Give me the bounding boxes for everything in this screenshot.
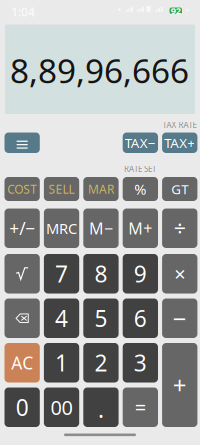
staticText: 4 bbox=[55, 303, 68, 333]
staticText: . bbox=[98, 394, 104, 424]
staticText: 6 bbox=[134, 303, 147, 333]
staticText: MAR bbox=[88, 181, 114, 197]
button[interactable]: TAX+ bbox=[162, 132, 197, 153]
button[interactable]: = bbox=[123, 387, 158, 427]
button[interactable]: M− bbox=[83, 208, 119, 248]
staticText: +/− bbox=[9, 217, 35, 240]
button[interactable]: M+ bbox=[123, 208, 158, 248]
button[interactable]: AC bbox=[4, 343, 40, 382]
staticText: MRC bbox=[46, 218, 77, 238]
staticText: RATE SET bbox=[124, 163, 156, 174]
button[interactable]: 00 bbox=[44, 387, 79, 427]
button[interactable]: MRC bbox=[44, 208, 79, 248]
button[interactable]: MAR bbox=[83, 177, 119, 201]
button[interactable]: 0 bbox=[4, 387, 40, 427]
staticText: = bbox=[135, 394, 146, 421]
staticText: % bbox=[134, 179, 146, 199]
staticText: M+ bbox=[128, 218, 152, 239]
staticText: − bbox=[173, 302, 187, 334]
button[interactable]: 8 bbox=[83, 254, 119, 293]
button[interactable]: Menu bbox=[4, 132, 40, 153]
button[interactable]: % bbox=[123, 177, 158, 201]
staticText: 0 bbox=[16, 392, 29, 422]
button[interactable]: 4 bbox=[44, 298, 79, 338]
staticText: M− bbox=[89, 218, 113, 239]
staticText: 92 bbox=[171, 5, 181, 17]
staticText: 9 bbox=[134, 259, 147, 289]
staticText: 5 bbox=[94, 303, 107, 333]
staticText: COST bbox=[7, 181, 37, 197]
staticText: 3 bbox=[134, 348, 147, 378]
button[interactable]: 5 bbox=[83, 298, 119, 338]
button[interactable]: ÷ bbox=[162, 208, 197, 248]
button[interactable]: GT bbox=[162, 177, 197, 201]
button[interactable]: 6 bbox=[123, 298, 158, 338]
staticText: 1 bbox=[55, 348, 68, 378]
button[interactable]: SELL bbox=[44, 177, 79, 201]
button[interactable]: 2 bbox=[83, 343, 119, 382]
button[interactable]: 3 bbox=[123, 343, 158, 382]
button[interactable]: . bbox=[83, 387, 119, 427]
button[interactable]: Backspace bbox=[4, 298, 40, 338]
button[interactable]: × bbox=[162, 254, 197, 293]
staticText: ÷ bbox=[174, 214, 186, 242]
staticText: × bbox=[174, 260, 185, 287]
staticText: TAX RATE bbox=[162, 119, 196, 130]
button[interactable]: TAX− bbox=[123, 132, 158, 153]
button[interactable]: +/− bbox=[4, 208, 40, 248]
staticText: GT bbox=[171, 180, 188, 198]
staticText: 8 bbox=[94, 259, 107, 289]
button[interactable]: 7 bbox=[44, 254, 79, 293]
staticText: TAX+ bbox=[164, 134, 195, 152]
staticText: AC bbox=[11, 351, 33, 374]
staticText: 7 bbox=[55, 259, 68, 289]
button[interactable]: 1 bbox=[44, 343, 79, 382]
staticText: 00 bbox=[50, 394, 72, 421]
button[interactable]: Square root bbox=[4, 254, 40, 293]
staticText: 2 bbox=[94, 348, 107, 378]
staticText: 1:04 bbox=[11, 4, 35, 20]
staticText: 8,89,96,666 bbox=[10, 48, 189, 92]
button[interactable]: 9 bbox=[123, 254, 158, 293]
staticText: TAX− bbox=[125, 134, 156, 152]
button[interactable]: − bbox=[162, 298, 197, 338]
staticText: + bbox=[173, 369, 187, 401]
button[interactable]: + bbox=[162, 343, 197, 427]
button[interactable]: COST bbox=[4, 177, 40, 201]
staticText: SELL bbox=[48, 181, 74, 197]
